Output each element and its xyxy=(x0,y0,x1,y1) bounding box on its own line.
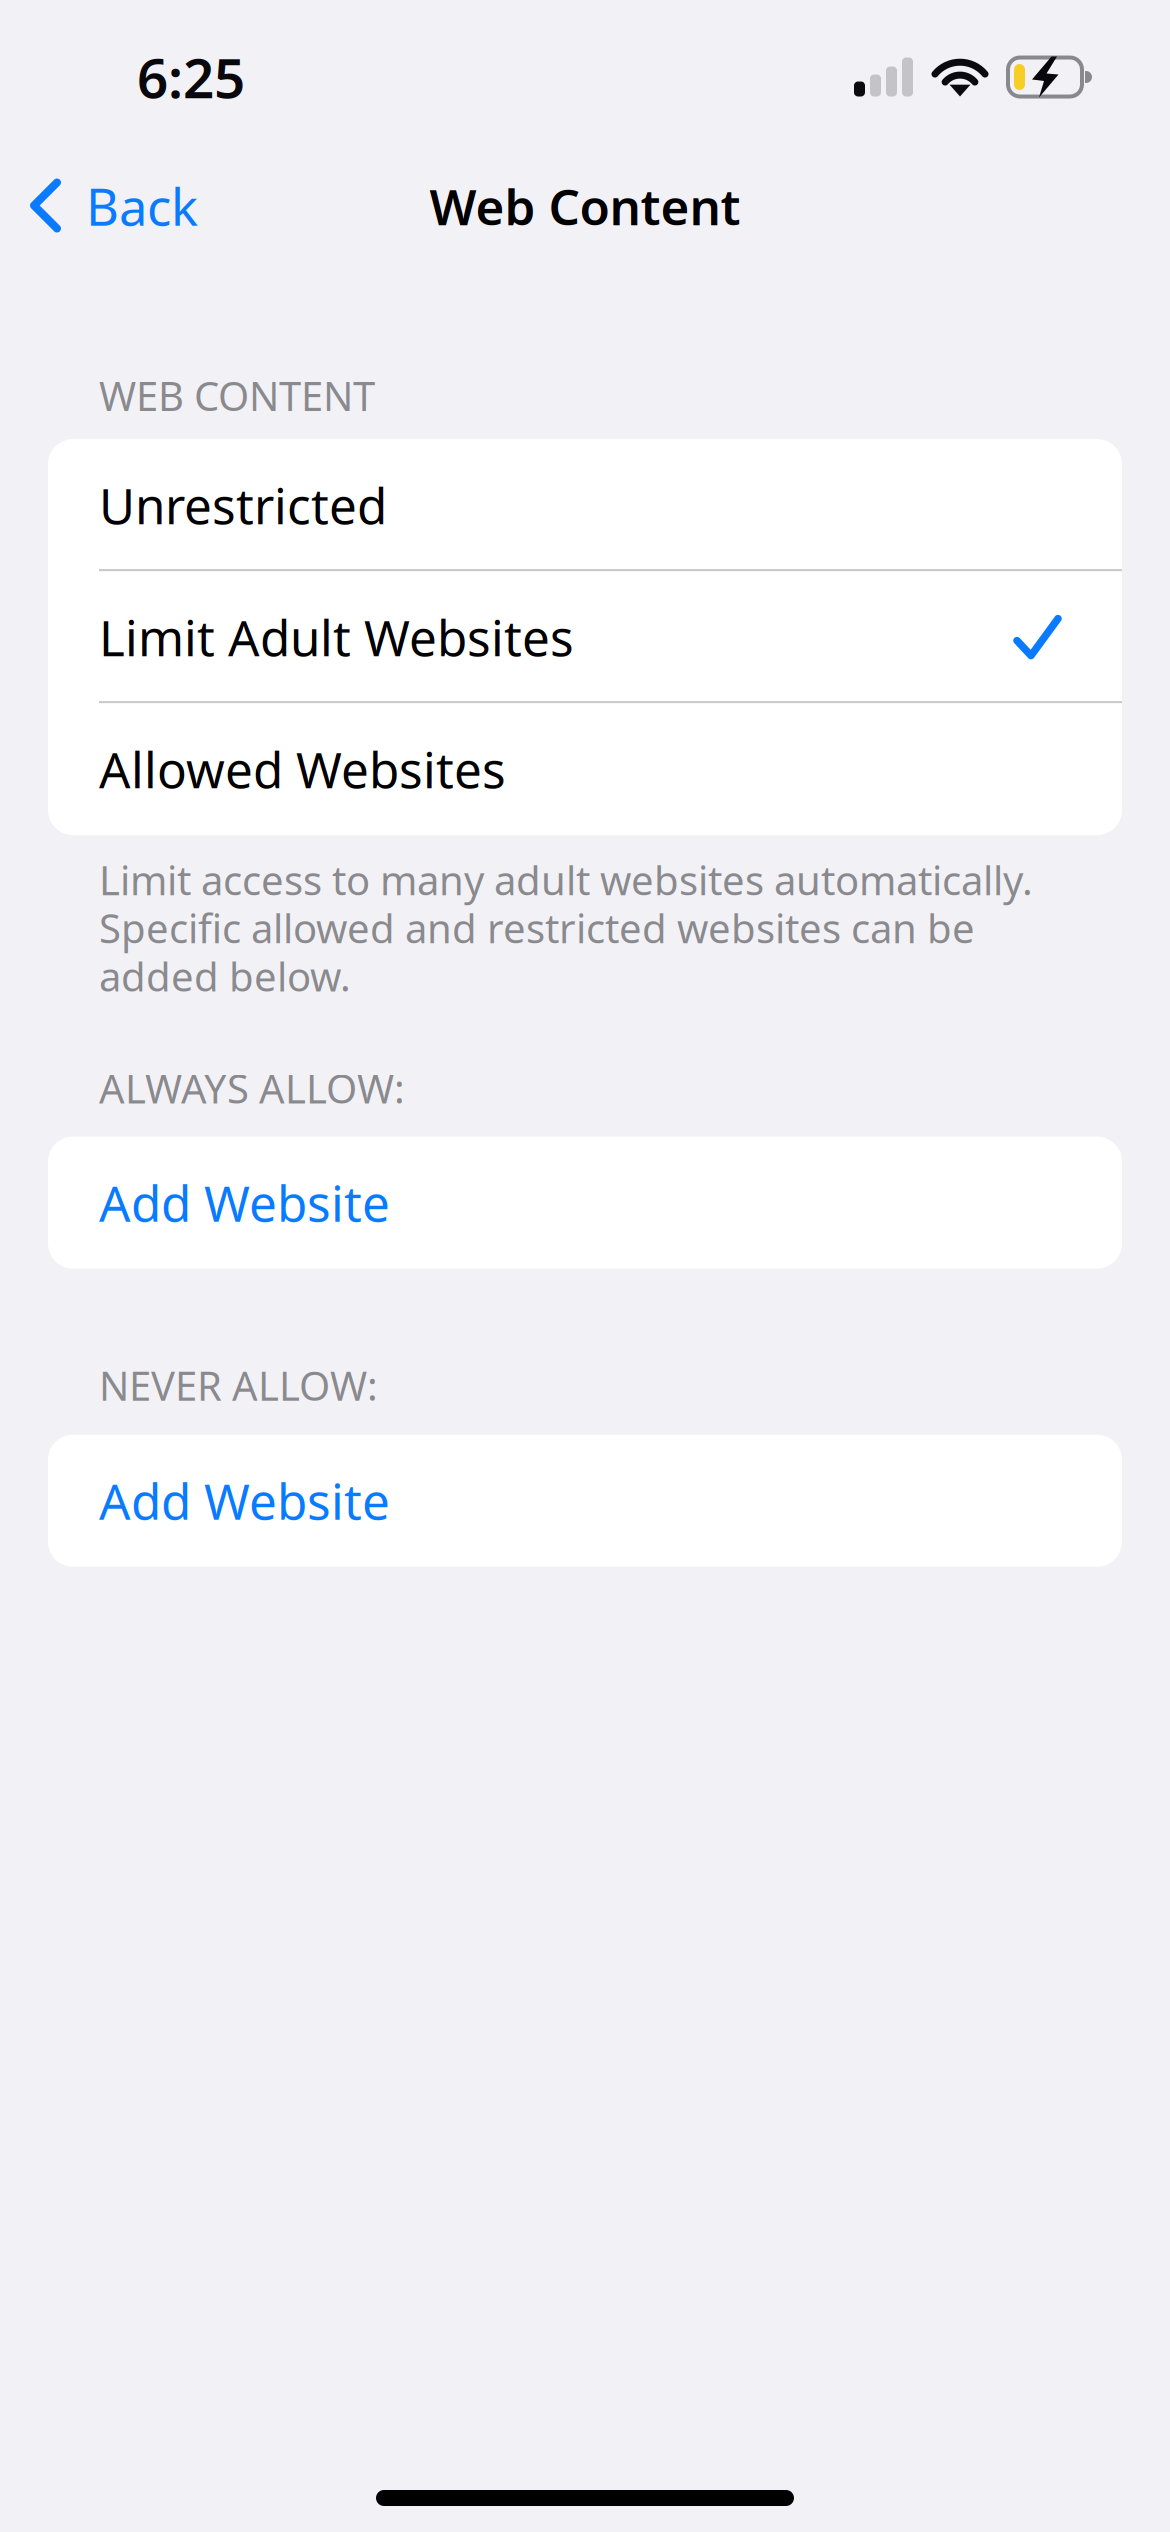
staticText: WEB CONTENT xyxy=(99,369,375,422)
staticText: Web Content xyxy=(429,173,740,239)
button[interactable]: Add Website xyxy=(48,1435,1122,1567)
staticText: Limit access to many adult websites auto… xyxy=(99,853,1033,1002)
staticText: Allowed Websites xyxy=(99,736,506,802)
staticText: 6:25 xyxy=(137,41,245,113)
button[interactable]: Allowed Websites xyxy=(48,703,1122,835)
staticText: Add Website xyxy=(99,1170,390,1235)
staticText: Limit Adult Websites xyxy=(99,604,574,670)
button[interactable]: Limit Adult Websites xyxy=(48,571,1122,703)
button[interactable]: Back xyxy=(0,162,222,250)
button[interactable]: Unrestricted xyxy=(48,439,1122,571)
staticText: ALWAYS ALLOW: xyxy=(99,1061,405,1115)
staticText: Add Website xyxy=(99,1468,390,1533)
button[interactable]: Add Website xyxy=(48,1137,1122,1269)
staticText: Back xyxy=(86,172,198,240)
staticText: Unrestricted xyxy=(99,472,387,538)
staticText: NEVER ALLOW: xyxy=(99,1359,378,1412)
